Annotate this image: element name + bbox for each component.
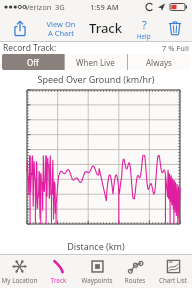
staticText: View On A Chart [38,19,84,38]
staticText: Verizon [25,2,52,12]
button[interactable]: When Live [64,54,127,70]
button[interactable]: Waypoints [78,255,116,288]
button[interactable]: My Location [0,255,39,288]
staticText: My Location [0,276,39,285]
button[interactable]: Chart List [154,255,192,288]
staticText: 3G [55,2,65,12]
button[interactable]: Delete [160,14,190,42]
staticText: Always [146,57,172,68]
button[interactable]: Off [2,54,64,70]
staticText: ? [142,17,147,32]
staticText: Speed Over Ground (km/hr) [0,73,192,85]
staticText: Waypoints [78,276,116,285]
button[interactable]: ? [128,14,160,42]
staticText: Help [137,32,151,40]
button[interactable]: View On A Chart [38,14,84,42]
button[interactable]: Share [2,14,38,42]
button[interactable]: Routes [116,255,154,288]
staticText: Off [27,57,39,68]
staticText: 7 % Full [162,43,189,53]
staticText: Record Track: [3,42,57,54]
staticText: Track [89,19,122,37]
button[interactable]: Track [39,255,78,288]
staticText: Track [39,276,78,285]
staticText: Distance (km) [0,240,192,252]
staticText: 1:59 AM [90,2,119,12]
button[interactable]: Always [127,54,190,70]
staticText: When Live [76,57,115,68]
staticText: Routes [116,276,154,285]
staticText: Chart List [154,276,192,285]
